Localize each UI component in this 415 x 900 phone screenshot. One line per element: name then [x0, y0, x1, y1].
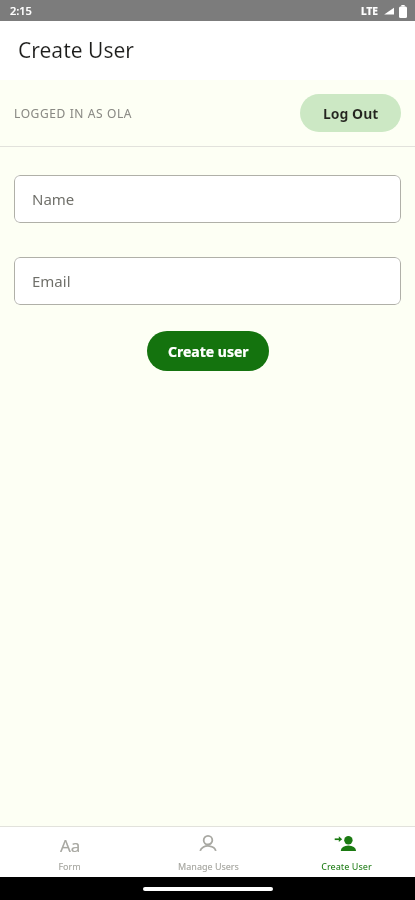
staticText: Create user: [168, 342, 249, 361]
button[interactable]: Form: [0, 827, 139, 877]
staticText: Email: [32, 271, 71, 291]
staticText: Form: [58, 860, 81, 872]
button[interactable]: Manage Users: [139, 827, 277, 877]
staticText: Aa: [60, 834, 81, 857]
staticText: Log Out: [323, 104, 379, 123]
button[interactable]: Name: [14, 175, 401, 223]
button[interactable]: Email: [14, 257, 401, 305]
button[interactable]: Create user: [147, 331, 269, 371]
staticText: Manage Users: [178, 860, 239, 872]
staticText: Create User: [18, 36, 134, 65]
staticText: Create User: [321, 860, 372, 872]
staticText: Name: [32, 189, 75, 209]
button[interactable]: Log Out: [300, 94, 401, 132]
staticText: 2:15: [10, 3, 32, 18]
staticText: LOGGED IN AS OLA: [14, 105, 133, 121]
staticText: LTE: [361, 4, 378, 18]
button[interactable]: Create User: [277, 827, 415, 877]
